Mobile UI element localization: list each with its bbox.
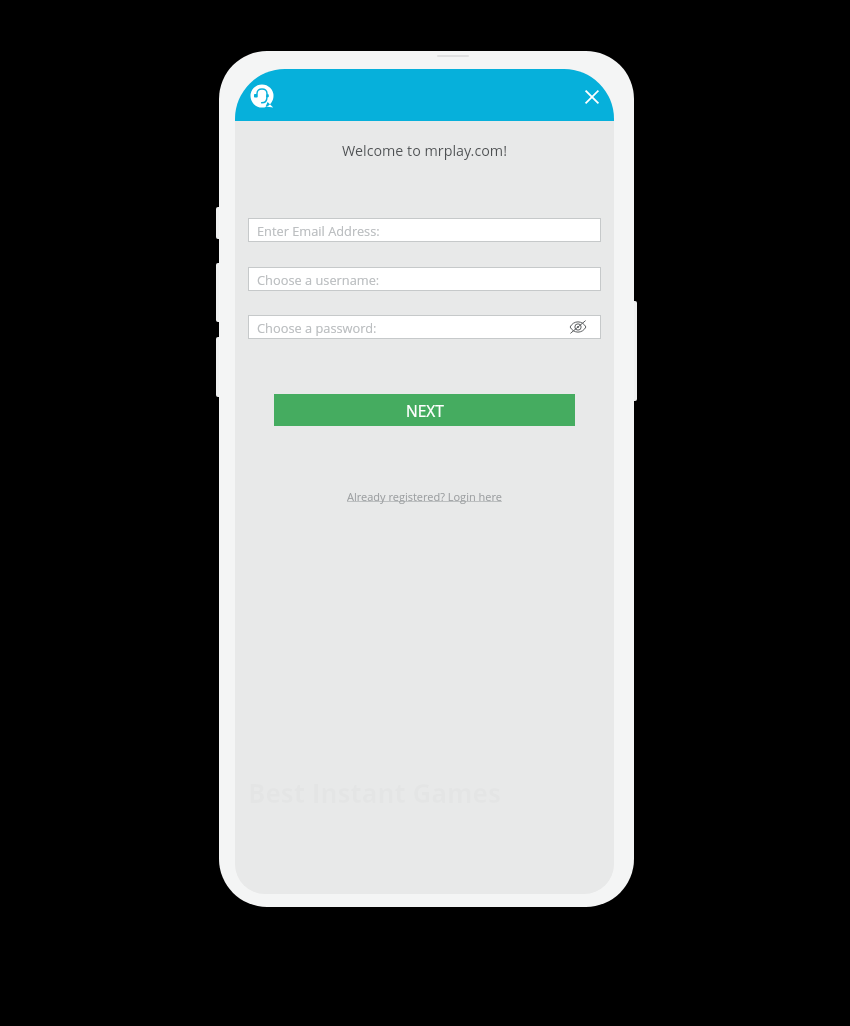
- staticText: Welcome to mrplay.com!: [342, 141, 507, 160]
- staticText: Choose a password:: [257, 319, 377, 336]
- button[interactable]: Customer support: [245, 79, 279, 113]
- staticText: Choose a username:: [257, 271, 380, 288]
- button[interactable]: Choose a username:: [248, 267, 601, 291]
- button[interactable]: Show password: [568, 317, 588, 337]
- button[interactable]: Enter Email Address:: [248, 218, 601, 242]
- button[interactable]: Close: [577, 82, 607, 112]
- staticText: NEXT: [406, 400, 444, 421]
- button[interactable]: NEXT: [274, 394, 575, 426]
- button[interactable]: Choose a password:: [248, 315, 601, 339]
- staticText: Enter Email Address:: [257, 222, 380, 239]
- button[interactable]: Already registered? Login here: [347, 489, 502, 504]
